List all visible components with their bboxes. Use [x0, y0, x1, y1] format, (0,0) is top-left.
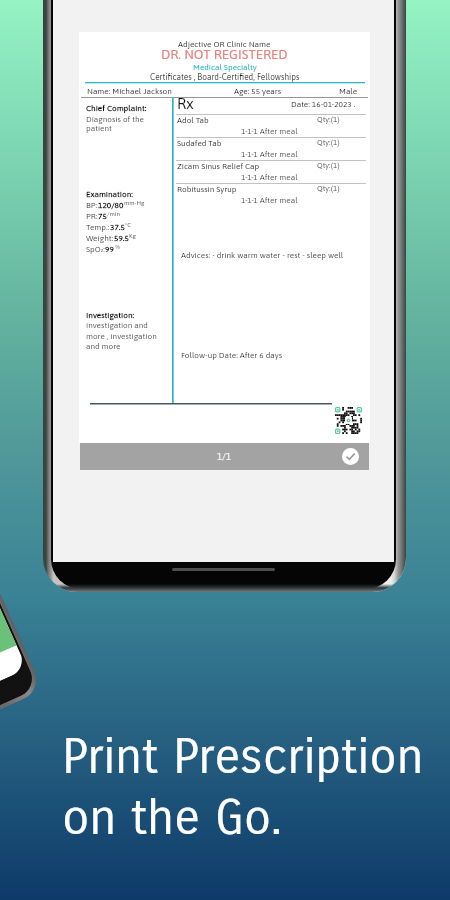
staticText: Robitussin Syrup: [177, 184, 237, 193]
staticText: DR. NOT REGISTERED: [161, 47, 288, 62]
staticText: Qty:(1): [317, 184, 340, 193]
staticText: Temp.:: [86, 222, 110, 231]
staticText: Weight:: [86, 233, 114, 242]
staticText: Kg: [129, 232, 136, 239]
staticText: Adjective OR Clinic Name: [178, 39, 271, 48]
staticText: Medical Specialty: [193, 62, 257, 71]
staticText: 75: [98, 211, 107, 220]
staticText: 1-1-1 After meal: [241, 172, 298, 181]
staticText: 120/80: [98, 200, 124, 209]
staticText: 59.5: [114, 233, 129, 242]
staticText: 1-1-1 After meal: [241, 126, 298, 135]
staticText: Sudafed Tab: [177, 138, 222, 147]
staticText: on the Go.: [62, 789, 282, 847]
staticText: and more: [86, 341, 121, 350]
staticText: Print Prescription: [62, 728, 424, 786]
staticText: Zicam Sinus Relief Cap: [177, 161, 260, 170]
staticText: Adol Tab: [177, 115, 209, 124]
staticText: °C: [125, 221, 131, 228]
staticText: patient: [86, 123, 112, 132]
staticText: more , investigation: [86, 331, 157, 340]
staticText: Qty:(1): [317, 138, 340, 147]
staticText: BP:: [86, 200, 98, 209]
staticText: 1/1: [217, 451, 232, 462]
staticText: Advices: - drink warm water - rest - sle…: [181, 250, 344, 259]
staticText: Qty:(1): [317, 161, 340, 170]
staticText: 1-1-1 After meal: [241, 149, 298, 158]
staticText: Chief Complaint:: [86, 103, 147, 112]
staticText: /min: [107, 210, 120, 217]
staticText: 99: [105, 244, 114, 253]
staticText: mm-Hg: [124, 199, 145, 206]
staticText: Certificates , Board-Certified, Fellowsh…: [150, 72, 300, 82]
staticText: 37.5: [110, 222, 125, 231]
button[interactable]: 1/1: [80, 443, 369, 470]
staticText: Age: 55 years: [234, 86, 282, 95]
staticText: Examination:: [86, 189, 133, 198]
staticText: Qty:(1): [317, 115, 340, 124]
staticText: Name: Michael Jackson: [87, 86, 172, 95]
staticText: Male: [339, 86, 358, 95]
staticText: Follow-up Date: After 6 days: [181, 350, 283, 359]
staticText: %: [114, 243, 120, 250]
staticText: Diagnosis of the: [86, 114, 145, 123]
staticText: Investigation:: [86, 310, 135, 319]
staticText: SpO₂:: [86, 244, 105, 253]
staticText: Rx: [177, 95, 194, 112]
button[interactable]: Confirm: [342, 448, 359, 465]
staticText: Date: 16-01-2023 .: [291, 99, 356, 108]
staticText: investigation and: [86, 320, 148, 329]
staticText: PR:: [86, 211, 98, 220]
staticText: 1-1-1 After meal: [241, 195, 298, 204]
